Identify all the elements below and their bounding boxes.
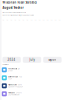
staticText: Total Fossils bbox=[8, 68, 17, 70]
button[interactable]: Daily Average bbox=[0, 74, 64, 82]
staticText: 2024 bbox=[8, 58, 16, 61]
staticText: August Tracker bbox=[2, 6, 23, 9]
staticText: Dane bbox=[18, 84, 22, 86]
staticText: Export bbox=[48, 58, 56, 61]
staticText: 10 bbox=[59, 19, 61, 21]
staticText: 2024-08 window bbox=[8, 94, 19, 96]
staticText: 24 days bbox=[16, 92, 22, 94]
staticText: Visit Days bbox=[8, 92, 15, 94]
staticText: Records collected per site, grouped by r… bbox=[2, 14, 34, 16]
staticText: 10 bbox=[55, 19, 57, 21]
staticText: Highest Site bbox=[8, 84, 17, 86]
staticText: 3,208 on 17 Aug 2024 bbox=[8, 86, 23, 88]
staticText: 21,401 bbox=[8, 70, 13, 72]
staticText: July bbox=[18, 68, 20, 70]
button[interactable]: Visit Days bbox=[0, 90, 64, 98]
staticText: Discover the regional object counts bbox=[2, 12, 26, 13]
staticText: 1,124 bbox=[8, 78, 12, 80]
button[interactable]: Highest Site bbox=[0, 82, 64, 90]
button[interactable]: Total Fossils bbox=[0, 66, 64, 74]
button[interactable]: July bbox=[23, 57, 41, 63]
button[interactable]: 2024 bbox=[2, 57, 21, 63]
staticText: Daily Average bbox=[8, 76, 18, 78]
staticText: Summary bbox=[2, 63, 9, 65]
button[interactable]: Export bbox=[43, 57, 62, 63]
staticText: July bbox=[29, 58, 34, 61]
staticText: Wisconsin Fossil Statistics bbox=[2, 1, 36, 4]
staticText: Aug bbox=[19, 76, 22, 78]
